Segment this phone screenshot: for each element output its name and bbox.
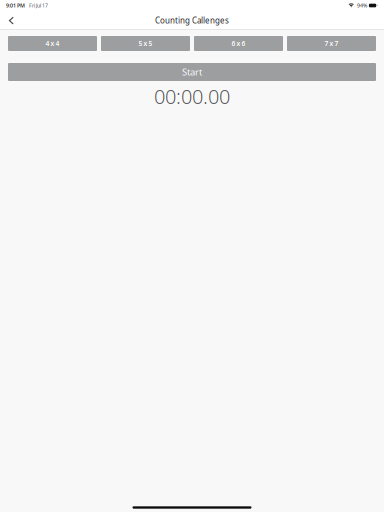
button[interactable]: 6 x 6 (194, 36, 283, 51)
staticText: 94% (357, 2, 367, 9)
staticText: Counting Callenges (155, 15, 229, 26)
staticText: 9:01 PM (6, 2, 25, 9)
button[interactable]: 5 x 5 (101, 36, 190, 51)
staticText: 6 x 6 (231, 39, 245, 48)
staticText: 00:00.00 (154, 83, 230, 110)
staticText: 7 x 7 (324, 39, 338, 48)
button[interactable]: 4 x 4 (8, 36, 97, 51)
button[interactable]: Back (4, 11, 19, 30)
staticText: 4 x 4 (45, 39, 59, 48)
staticText: Start (182, 66, 202, 78)
button[interactable]: Start (8, 63, 376, 81)
staticText: 5 x 5 (138, 39, 152, 48)
button[interactable]: 7 x 7 (287, 36, 376, 51)
staticText: Fri Jul 17 (29, 2, 48, 9)
